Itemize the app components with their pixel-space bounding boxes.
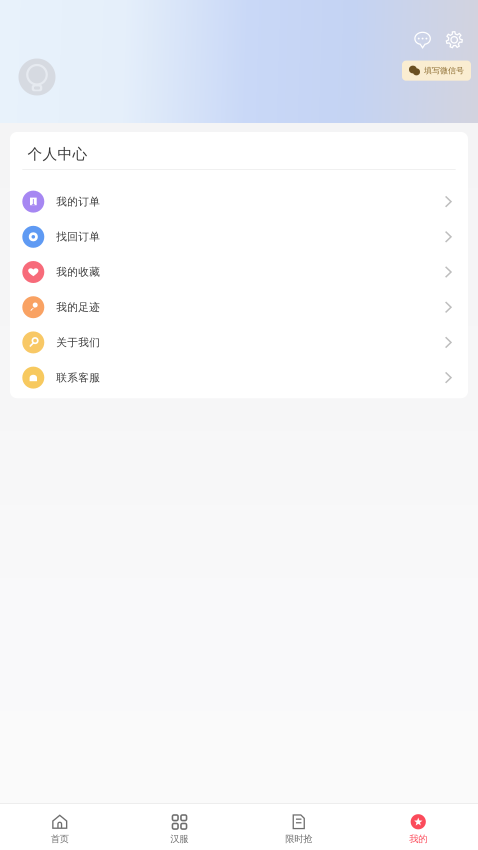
button[interactable]: 找回订单 bbox=[10, 219, 468, 254]
staticText: 找回订单 bbox=[56, 230, 100, 243]
button[interactable]: 我的足迹 bbox=[10, 290, 468, 325]
button[interactable]: 填写微信号 bbox=[402, 61, 471, 81]
staticText: 我的订单 bbox=[56, 195, 100, 208]
button[interactable]: 我的订单 bbox=[10, 184, 468, 219]
button[interactable]: Settings bbox=[445, 31, 463, 49]
staticText: 我的 bbox=[409, 833, 427, 845]
staticText: 我的足迹 bbox=[56, 301, 100, 314]
button[interactable]: 我的收藏 bbox=[10, 254, 468, 290]
button[interactable]: 限时抢 bbox=[239, 804, 358, 850]
button[interactable]: 联系客服 bbox=[10, 360, 468, 395]
staticText: 首页 bbox=[51, 833, 69, 845]
staticText: 个人中心 bbox=[27, 145, 87, 163]
button[interactable]: 首页 bbox=[0, 804, 119, 850]
staticText: 关于我们 bbox=[56, 336, 100, 349]
staticText: 我的收藏 bbox=[56, 265, 100, 279]
staticText: 联系客服 bbox=[56, 371, 100, 384]
button[interactable]: 汉服 bbox=[119, 804, 239, 850]
button[interactable]: 关于我们 bbox=[10, 325, 468, 360]
button[interactable]: 我的 bbox=[358, 804, 478, 850]
staticText: 限时抢 bbox=[285, 833, 312, 845]
staticText: 汉服 bbox=[170, 833, 188, 845]
button[interactable]: Messages bbox=[414, 31, 431, 49]
staticText: 填写微信号 bbox=[424, 66, 464, 75]
